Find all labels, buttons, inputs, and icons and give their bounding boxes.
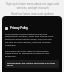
staticText: This privacy notice explains how the app… <box>5 32 59 47</box>
button[interactable]: Information we collect and how it is use… <box>5 60 59 68</box>
staticText: Sign up to learn more about our apps and… <box>6 2 59 10</box>
staticText: Privacy Policy <box>10 26 29 30</box>
staticText: Information we collect and how it is use… <box>7 61 57 67</box>
staticText: Read our latest news and updates <box>11 12 54 16</box>
staticText: We never sell your data to third party a… <box>5 49 59 58</box>
